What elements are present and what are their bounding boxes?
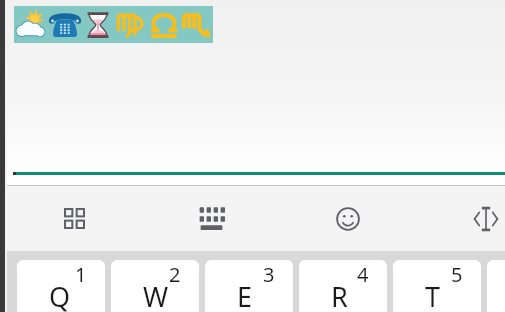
staticText: Q (49, 278, 71, 312)
button[interactable]: Text cursor (455, 186, 505, 251)
button[interactable]: 2 (111, 260, 199, 312)
button[interactable]: libra (147, 6, 180, 43)
button[interactable]: 1 (17, 260, 105, 312)
staticText: W (143, 278, 169, 312)
button[interactable]: 6 (487, 260, 505, 312)
staticText: 5 (451, 261, 463, 288)
button[interactable]: Categories (43, 186, 105, 251)
button[interactable]: telephone (48, 6, 81, 43)
button[interactable]: 3 (205, 260, 293, 312)
staticText: 1 (75, 261, 87, 288)
button[interactable]: Keyboard (180, 186, 242, 251)
button[interactable]: weather (14, 6, 48, 43)
staticText: 4 (357, 261, 369, 288)
staticText: 2 (169, 261, 181, 288)
button[interactable]: virgo (114, 6, 147, 43)
button[interactable]: 4 (299, 260, 387, 312)
button[interactable]: hourglass (81, 6, 114, 43)
staticText: 3 (263, 261, 275, 288)
staticText: E (237, 278, 253, 312)
button[interactable]: 5 (393, 260, 481, 312)
staticText: T (425, 278, 441, 312)
staticText: R (331, 278, 348, 312)
button[interactable]: Emoji (317, 186, 379, 251)
button[interactable]: scorpio (180, 6, 213, 43)
